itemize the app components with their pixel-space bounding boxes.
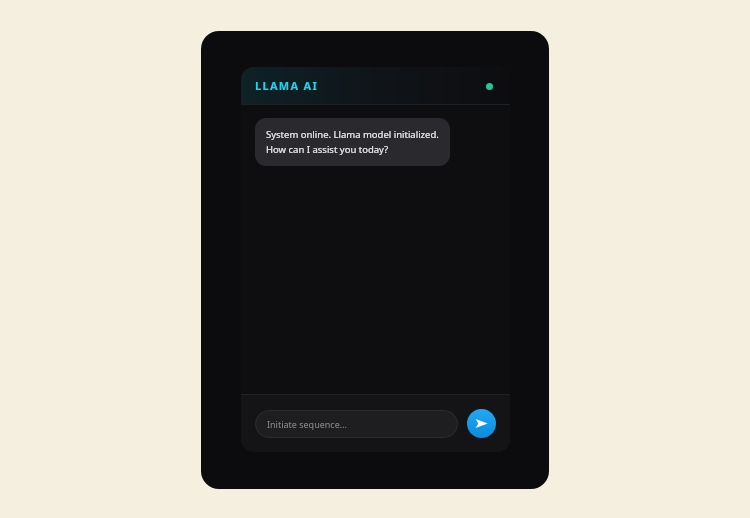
button[interactable]: System online. Llama model initialized. <box>255 118 450 166</box>
other: Online status <box>482 79 496 93</box>
staticText: How can I assist you today? <box>266 143 389 156</box>
staticText: Initiate sequence... <box>267 418 347 430</box>
staticText: System online. Llama model initialized. <box>266 128 439 141</box>
staticText: LLAMA AI <box>255 78 319 93</box>
button[interactable]: Send <box>467 409 496 438</box>
button[interactable]: LLAMA AI <box>255 78 319 93</box>
button[interactable]: Initiate sequence... <box>255 410 458 438</box>
